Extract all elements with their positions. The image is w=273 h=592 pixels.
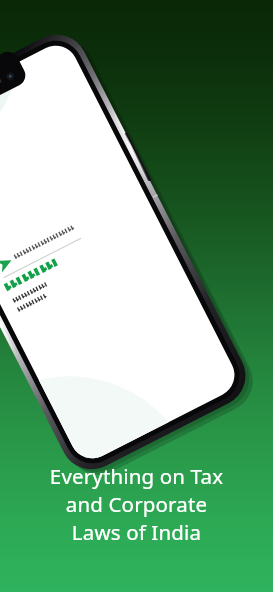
staticText: Everything on Tax and Corporate Laws of … bbox=[10, 462, 263, 546]
button[interactable]: Everything on Tax and Corporate Laws of … bbox=[0, 0, 273, 592]
